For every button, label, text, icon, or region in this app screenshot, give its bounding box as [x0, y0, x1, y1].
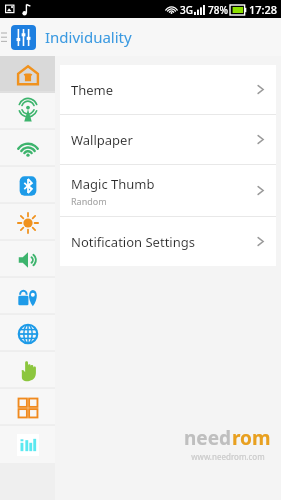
button[interactable]: Mobile network — [0, 93, 55, 130]
staticText: Individuality — [45, 27, 132, 47]
staticText: Theme — [71, 81, 114, 99]
button[interactable]: Sound — [0, 241, 55, 278]
staticText: 3G — [180, 3, 193, 17]
button[interactable]: Apps — [0, 389, 55, 426]
button[interactable]: Wi-Fi — [0, 130, 55, 167]
other: Individuality — [11, 25, 36, 50]
staticText: 78% — [208, 3, 228, 17]
button[interactable]: Bluetooth — [0, 167, 55, 204]
button[interactable]: Wallpaper — [60, 115, 276, 164]
button[interactable]: Gestures — [0, 352, 55, 389]
button[interactable]: System — [0, 426, 55, 463]
staticText: rom — [232, 425, 271, 451]
button[interactable]: Magic Thumb — [60, 165, 276, 216]
staticText: Notification Settings — [71, 233, 195, 251]
staticText: 17:28 — [249, 2, 278, 17]
button[interactable]: Individuality — [0, 56, 55, 93]
button[interactable]: Notification Settings — [60, 217, 276, 266]
button[interactable]: Theme — [60, 65, 276, 114]
button[interactable]: Location — [0, 278, 55, 315]
staticText: Wallpaper — [71, 131, 133, 149]
button[interactable]: Network — [0, 315, 55, 352]
staticText: need — [184, 425, 232, 451]
button[interactable]: Display — [0, 204, 55, 241]
staticText: www.needrom.com — [191, 451, 265, 462]
staticText: Magic Thumb — [71, 175, 155, 193]
staticText: Random — [71, 195, 107, 207]
